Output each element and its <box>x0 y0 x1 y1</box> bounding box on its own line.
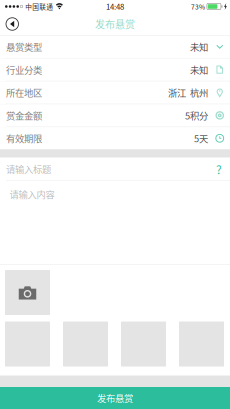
staticText: 73% <box>191 2 205 11</box>
button[interactable]: 发布悬赏 <box>0 387 230 409</box>
button[interactable]: 有效期限 <box>0 127 230 149</box>
staticText: 5积分 <box>185 109 208 122</box>
button[interactable]: 悬赏类型 <box>0 35 230 58</box>
staticText: 浙江 杭州 <box>168 86 208 99</box>
staticText: ? <box>216 160 222 178</box>
button[interactable]: 请输入标题 <box>0 157 230 181</box>
staticText: 所在地区 <box>6 86 42 99</box>
button[interactable]: 所在地区 <box>0 81 230 104</box>
button[interactable]: 行业分类 <box>0 58 230 81</box>
staticText: 悬赏类型 <box>6 40 42 53</box>
staticText: 有效期限 <box>6 131 42 145</box>
staticText: 请输入标题 <box>6 162 51 176</box>
button[interactable]: Back <box>0 13 30 35</box>
staticText: 发布悬赏 <box>97 391 133 405</box>
staticText: 5天 <box>194 131 208 145</box>
staticText: 14:48 <box>106 1 124 12</box>
staticText: 未知 <box>190 40 208 53</box>
button[interactable]: 请输入内容 <box>0 181 230 264</box>
button[interactable]: Add photo <box>5 270 50 315</box>
staticText: 未知 <box>190 63 208 76</box>
button[interactable]: 赏金金额 <box>0 104 230 127</box>
staticText: 行业分类 <box>6 63 42 76</box>
staticText: 请输入内容 <box>9 187 54 201</box>
staticText: 赏金金额 <box>6 109 42 122</box>
staticText: 中国联通 <box>25 2 53 11</box>
staticText: 发布悬赏 <box>95 17 135 31</box>
